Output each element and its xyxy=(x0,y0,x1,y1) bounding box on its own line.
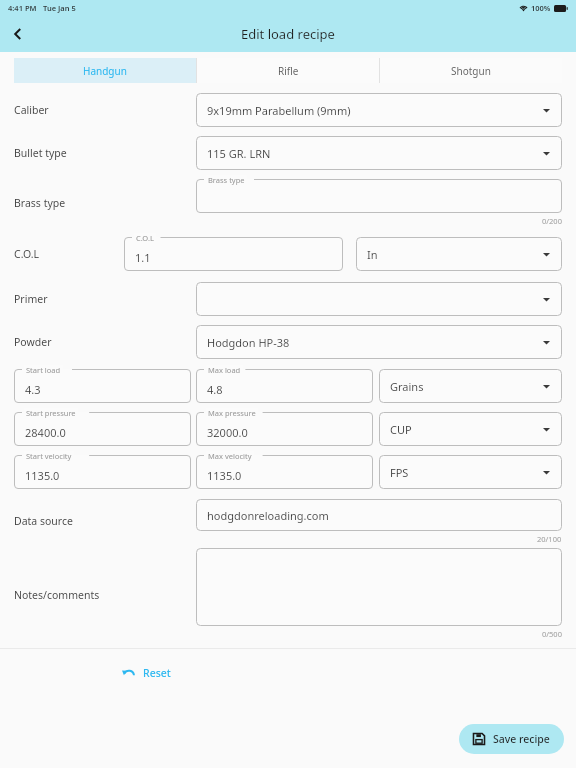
staticText: Start load xyxy=(26,365,61,375)
staticText: Reset xyxy=(143,666,171,680)
button[interactable]: Start velocity xyxy=(14,455,191,489)
button[interactable]: Save recipe xyxy=(459,724,564,754)
staticText: Powder xyxy=(14,335,52,349)
staticText: Hodgdon HP-38 xyxy=(207,335,290,350)
button[interactable]: Back xyxy=(0,16,36,52)
staticText: Tue Jan 5 xyxy=(43,3,76,13)
button[interactable]: FPS xyxy=(379,455,562,489)
button[interactable]: Hodgdon HP-38 xyxy=(196,325,562,359)
staticText: 1135.0 xyxy=(207,468,242,483)
staticText: Primer xyxy=(14,292,48,306)
staticText: 1135.0 xyxy=(25,468,60,483)
button[interactable]: Start load xyxy=(14,369,191,403)
staticText: 32000.0 xyxy=(207,425,248,440)
staticText: 1.1 xyxy=(135,250,151,265)
staticText: Edit load recipe xyxy=(241,25,335,43)
button[interactable]: Brass type xyxy=(196,179,562,213)
staticText: In xyxy=(367,247,378,262)
staticText: Brass type xyxy=(208,175,245,185)
staticText: Max load xyxy=(208,365,241,375)
button[interactable]: CUP xyxy=(379,412,562,446)
button[interactable]: In xyxy=(356,237,562,271)
staticText: Data source xyxy=(14,514,73,528)
button[interactable]: 9x19mm Parabellum (9mm) xyxy=(196,93,562,127)
staticText: Save recipe xyxy=(493,732,550,746)
button[interactable]: Start pressure xyxy=(14,412,191,446)
button[interactable] xyxy=(196,282,562,316)
staticText: 4.8 xyxy=(207,382,223,397)
staticText: Bullet type xyxy=(14,146,67,160)
staticText: 4:41 PM xyxy=(8,3,37,13)
button[interactable]: Max pressure xyxy=(196,412,373,446)
staticText: 9x19mm Parabellum (9mm) xyxy=(207,103,351,118)
button[interactable]: C.O.L xyxy=(124,237,343,271)
staticText: Caliber xyxy=(14,103,49,117)
staticText: Brass type xyxy=(14,196,66,210)
staticText: Max velocity xyxy=(208,451,252,461)
button[interactable]: Reset xyxy=(116,663,177,683)
staticText: 115 GR. LRN xyxy=(207,146,271,161)
staticText: 100% xyxy=(531,3,551,13)
staticText: Rifle xyxy=(278,64,299,78)
staticText: Notes/comments xyxy=(14,588,100,602)
staticText: 0/500 xyxy=(542,629,562,639)
staticText: Max pressure xyxy=(208,408,256,418)
staticText: Grains xyxy=(390,379,424,394)
button[interactable]: Rifle xyxy=(197,58,379,83)
staticText: C.O.L xyxy=(136,233,154,243)
staticText: FPS xyxy=(390,465,409,480)
staticText: 20/100 xyxy=(537,534,562,544)
staticText: Start pressure xyxy=(26,408,76,418)
staticText: C.O.L xyxy=(14,247,40,261)
staticText: 0/200 xyxy=(542,216,562,226)
staticText: hodgdonreloading.com xyxy=(207,508,329,523)
staticText: 4.3 xyxy=(25,382,41,397)
button[interactable]: hodgdonreloading.com xyxy=(196,499,562,531)
button[interactable]: Max velocity xyxy=(196,455,373,489)
button[interactable]: Grains xyxy=(379,369,562,403)
button[interactable]: Shotgun xyxy=(380,58,562,83)
button[interactable] xyxy=(196,548,562,626)
button[interactable]: Max load xyxy=(196,369,373,403)
button[interactable]: 115 GR. LRN xyxy=(196,136,562,170)
staticText: CUP xyxy=(390,422,412,437)
staticText: 28400.0 xyxy=(25,425,66,440)
staticText: Handgun xyxy=(83,64,127,78)
button[interactable]: Handgun xyxy=(14,58,196,83)
staticText: Shotgun xyxy=(451,64,491,78)
staticText: Start velocity xyxy=(26,451,72,461)
